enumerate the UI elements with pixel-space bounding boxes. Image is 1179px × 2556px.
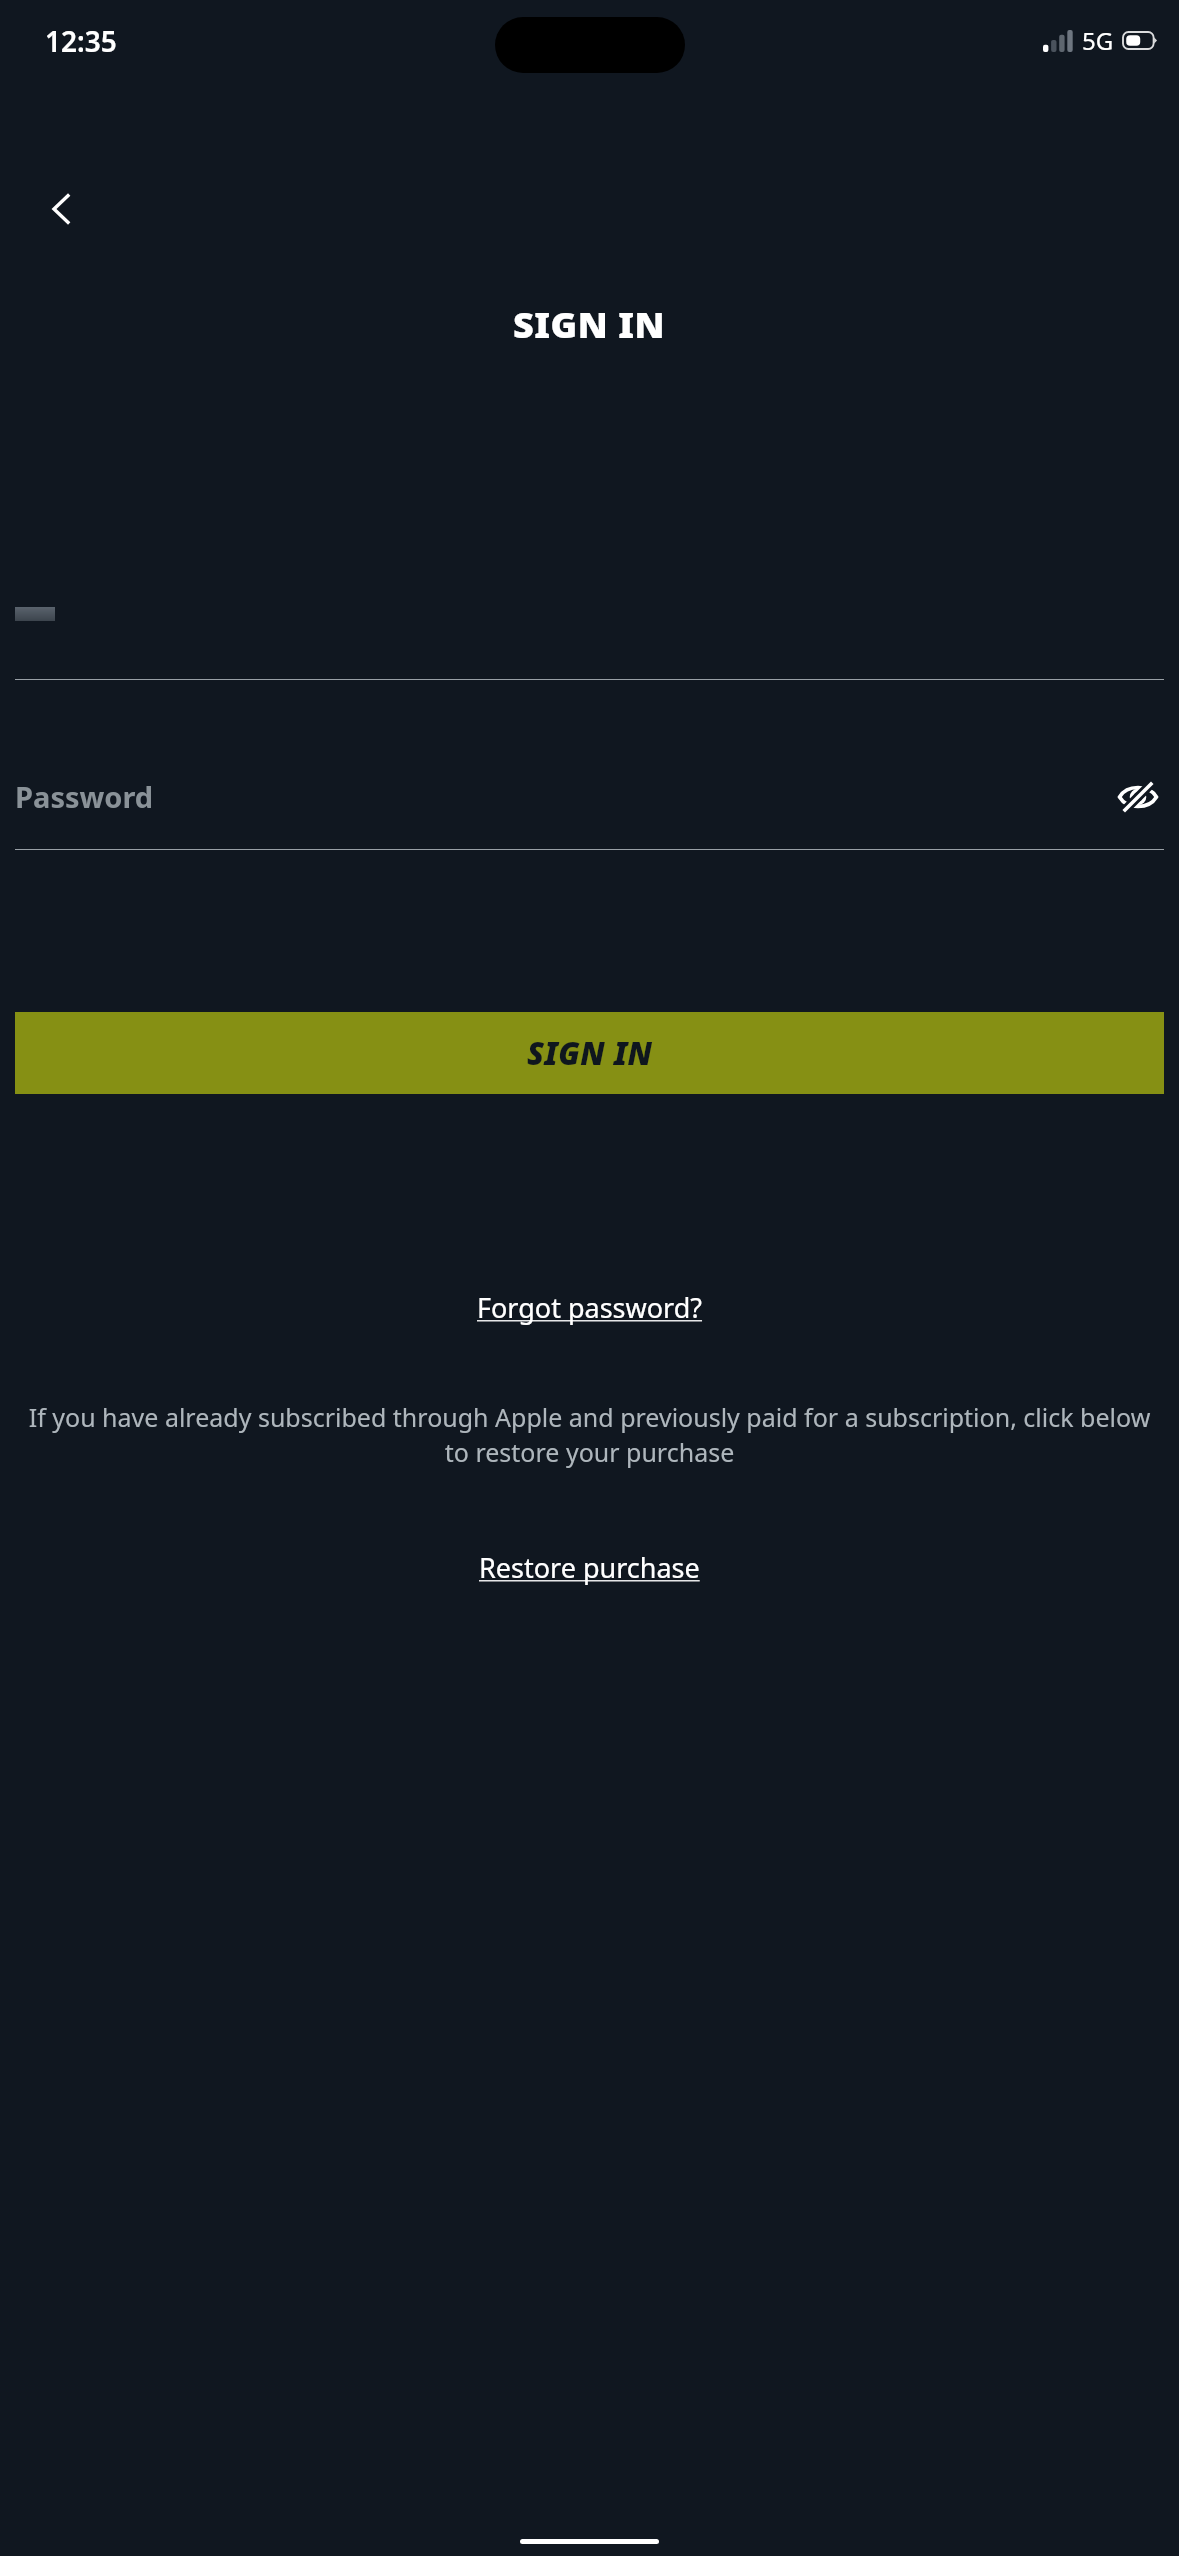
- button[interactable]: Back: [28, 175, 96, 243]
- button[interactable]: Forgot password?: [469, 1285, 711, 1330]
- staticText: SIGN IN: [527, 1032, 653, 1074]
- staticText: SIGN IN: [513, 300, 666, 349]
- staticText: 5G: [1082, 24, 1114, 57]
- button[interactable]: [15, 590, 1164, 680]
- button[interactable]: Password: [15, 755, 1164, 850]
- button[interactable]: SIGN IN: [15, 1012, 1164, 1094]
- staticText: 12:35: [45, 22, 117, 60]
- button[interactable]: Show password: [1112, 771, 1164, 823]
- staticText: If you have already subscribed through A…: [22, 1400, 1157, 1470]
- staticText: Forgot password?: [477, 1289, 703, 1326]
- button[interactable]: Restore purchase: [471, 1545, 708, 1590]
- staticText: Password: [15, 777, 154, 816]
- staticText: Restore purchase: [479, 1549, 700, 1586]
